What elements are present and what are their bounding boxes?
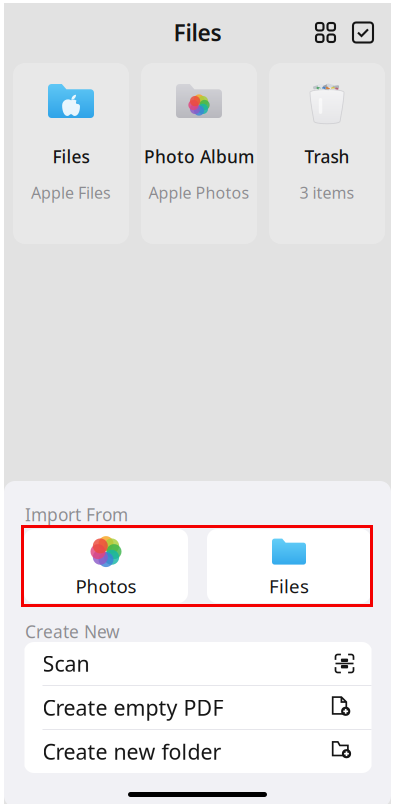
button[interactable]: Files	[207, 529, 371, 603]
button[interactable]: Scan	[24, 642, 371, 686]
button[interactable]: Photo Album	[141, 63, 257, 244]
staticText: Files	[269, 574, 309, 598]
staticText: Photos	[75, 574, 136, 598]
button[interactable]: Create empty PDF	[24, 686, 371, 730]
staticText: Create empty PDF	[42, 693, 223, 722]
staticText: Import From	[25, 503, 128, 526]
button[interactable]: Grid view	[310, 17, 341, 48]
button[interactable]: Files	[13, 63, 129, 244]
button[interactable]: Photos	[24, 529, 188, 603]
staticText: Files	[173, 17, 221, 47]
staticText: Apple Files	[31, 182, 111, 203]
button[interactable]: Trash	[269, 63, 385, 244]
staticText: Create new folder	[42, 737, 221, 766]
staticText: Trash	[304, 145, 349, 168]
staticText: 3 items	[299, 182, 354, 203]
staticText: Photo Album	[144, 145, 254, 168]
staticText: Files	[52, 145, 89, 168]
staticText: Apple Photos	[148, 182, 249, 203]
button[interactable]: Select	[347, 16, 379, 48]
staticText: Scan	[42, 649, 89, 678]
button[interactable]: Create new folder	[24, 730, 371, 773]
staticText: Create New	[25, 620, 120, 643]
